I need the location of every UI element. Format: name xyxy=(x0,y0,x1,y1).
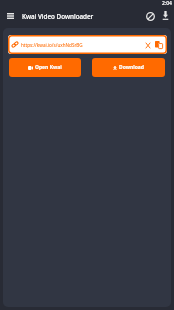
staticText: Open Kwai xyxy=(35,64,62,71)
button[interactable]: Open Kwai xyxy=(9,58,81,77)
staticText: Download xyxy=(119,64,144,71)
staticText: https://kwai.io/s/uxhNdSrBG xyxy=(21,42,83,48)
button[interactable]: Downloads xyxy=(158,8,172,22)
staticText: 2:04 xyxy=(162,0,172,7)
button[interactable]: Open navigation menu xyxy=(3,9,17,23)
button[interactable]: Download xyxy=(92,58,165,77)
button[interactable]: Clear text xyxy=(142,36,154,54)
staticText: Kwai Video Downloader xyxy=(22,12,94,21)
button[interactable]: https://kwai.io/s/uxhNdSrBG xyxy=(8,35,167,54)
button[interactable]: Paste from clipboard xyxy=(153,36,165,54)
button[interactable]: Remove ads xyxy=(143,9,157,23)
